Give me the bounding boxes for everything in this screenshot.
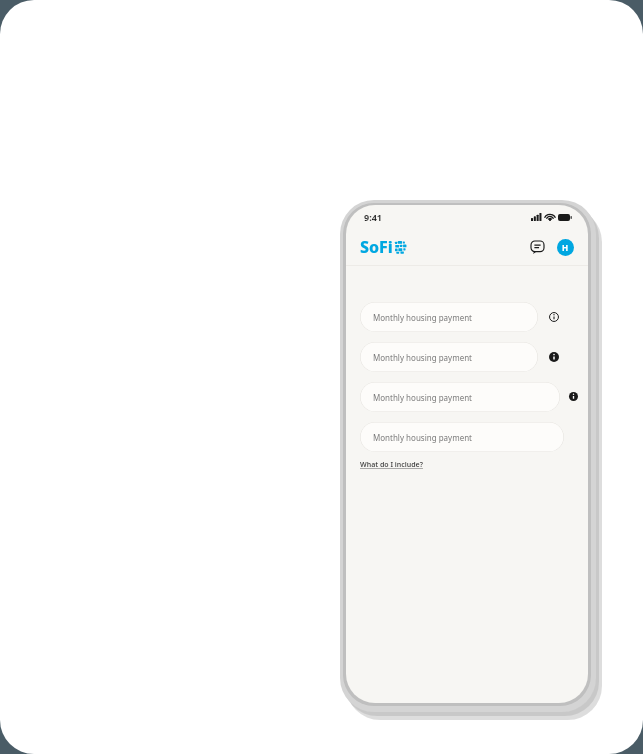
staticText: SoFi [360, 236, 393, 258]
button[interactable]: Monthly housing payment [360, 422, 564, 452]
staticText: Monthly housing payment [373, 352, 472, 363]
staticText: Monthly housing payment [373, 312, 472, 323]
button[interactable]: More info [569, 390, 578, 404]
button[interactable]: Monthly housing payment [360, 302, 538, 332]
staticText: H [562, 242, 569, 253]
staticText: 9:41 [364, 211, 382, 223]
button[interactable]: More info [547, 350, 561, 364]
staticText: Monthly housing payment [373, 432, 472, 443]
button[interactable]: Monthly housing payment [360, 382, 560, 412]
staticText: Monthly housing payment [373, 392, 472, 403]
staticText: What do I include? [360, 460, 423, 470]
button[interactable]: Messages [527, 237, 547, 257]
button[interactable]: Monthly housing payment [360, 342, 538, 372]
button[interactable]: Profile [557, 239, 574, 256]
button[interactable]: More info [547, 310, 561, 324]
button[interactable]: What do I include? [360, 458, 423, 472]
